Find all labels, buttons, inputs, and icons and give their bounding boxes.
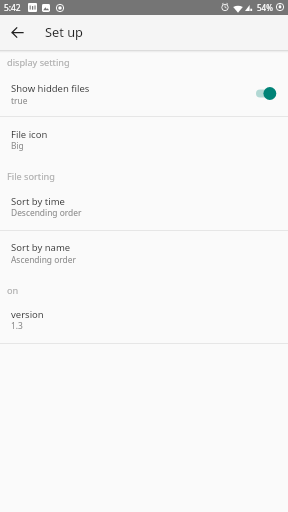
staticText: Show hidden files	[11, 82, 90, 95]
staticText: on	[7, 284, 19, 297]
button[interactable]: Sort by name	[0, 231, 288, 274]
staticText: version	[11, 308, 44, 321]
button[interactable]: version	[0, 304, 288, 343]
button[interactable]: Sort by time	[0, 190, 288, 230]
staticText: Sort by time	[11, 195, 65, 208]
staticText: File sorting	[7, 170, 55, 183]
staticText: File icon	[11, 128, 48, 141]
staticText: Big	[11, 140, 24, 151]
staticText: display setting	[7, 56, 70, 69]
button[interactable]: Show hidden files	[0, 74, 288, 116]
button[interactable]: Back	[1, 15, 34, 48]
staticText: Descending order	[11, 207, 82, 218]
button[interactable]: File icon	[0, 117, 288, 160]
staticText: Set up	[45, 23, 83, 40]
staticText: 1.3	[11, 320, 23, 331]
staticText: true	[11, 95, 28, 106]
staticText: Sort by name	[11, 241, 71, 254]
staticText: 54%	[257, 2, 273, 13]
staticText: Ascending order	[11, 254, 76, 265]
staticText: 5:42	[4, 2, 21, 13]
button[interactable]: Show hidden files toggle	[256, 87, 276, 100]
